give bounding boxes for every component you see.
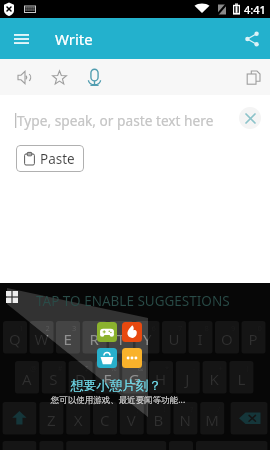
button[interactable]: TAP TO ENABLE SUGGESTIONS bbox=[36, 292, 230, 310]
button[interactable]: Shopping bbox=[97, 348, 117, 368]
staticText: Write bbox=[55, 29, 93, 49]
button[interactable]: Paste bbox=[16, 145, 84, 172]
button[interactable]: Apps bbox=[6, 291, 18, 303]
button[interactable]: Speak bbox=[7, 60, 41, 94]
button[interactable]: Games bbox=[97, 322, 117, 342]
staticText: 想要小憩片刻？ bbox=[0, 377, 251, 393]
button[interactable]: Favorite bbox=[42, 60, 76, 94]
button[interactable]: Voice input bbox=[77, 60, 111, 94]
button[interactable]: More bbox=[122, 348, 142, 368]
staticText: 4:41 bbox=[244, 2, 266, 17]
button[interactable]: Trending bbox=[122, 322, 142, 342]
button[interactable]: Open navigation menu bbox=[7, 25, 35, 53]
staticText: Type, speak, or paste text here bbox=[17, 111, 214, 130]
button[interactable]: Share bbox=[238, 25, 266, 53]
staticText: Paste bbox=[40, 150, 75, 168]
button[interactable]: Clear text bbox=[239, 107, 261, 129]
button[interactable]: Copy bbox=[236, 60, 270, 94]
staticText: 您可以使用游戏、最近要闻等功能... bbox=[0, 394, 253, 406]
